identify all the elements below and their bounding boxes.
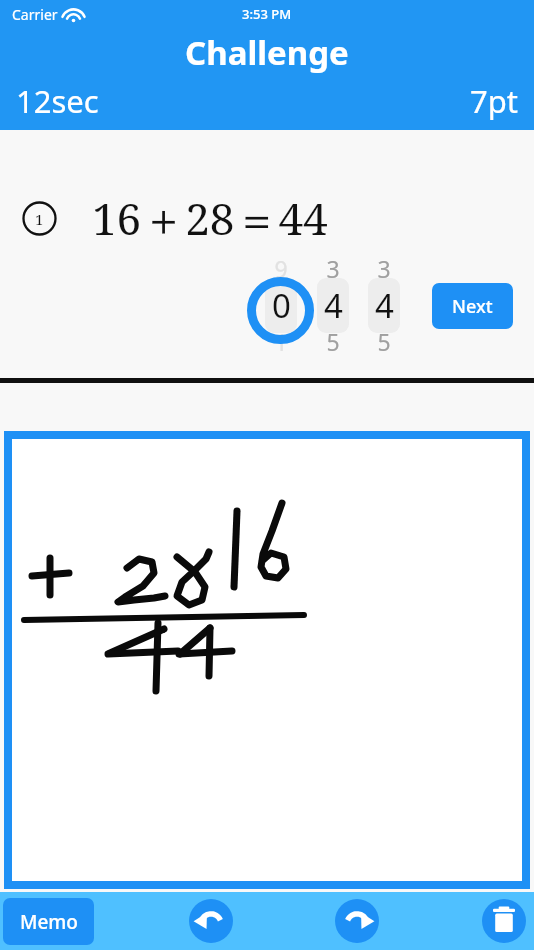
button[interactable]: Digit 4: [368, 253, 400, 357]
staticText: 7pt: [470, 80, 518, 122]
button[interactable]: Digit 4: [317, 253, 349, 357]
staticText: Challenge: [185, 30, 349, 75]
button[interactable]: Clear drawing: [480, 897, 528, 945]
staticText: 16＋28＝44: [92, 188, 328, 248]
staticText: 1: [265, 326, 297, 357]
staticText: 3:53 PM: [242, 5, 292, 23]
staticText: 3: [317, 253, 349, 284]
staticText: Next: [452, 294, 493, 319]
staticText: Memo: [20, 909, 78, 935]
button[interactable]: Undo: [187, 897, 235, 945]
button[interactable]: Next: [432, 283, 513, 329]
staticText: 5: [317, 326, 349, 357]
staticText: 1: [35, 209, 44, 229]
staticText: 4: [324, 283, 343, 328]
staticText: 0: [272, 283, 291, 328]
staticText: 4: [375, 283, 394, 328]
staticText: 9: [265, 253, 297, 284]
button[interactable]: Memo: [3, 898, 94, 945]
button[interactable]: Selected digit 0: [247, 277, 314, 344]
button[interactable]: Handwriting area: [12, 439, 522, 881]
staticText: 12sec: [16, 80, 99, 122]
button[interactable]: Redo: [333, 897, 381, 945]
staticText: 5: [368, 326, 400, 357]
button[interactable]: Digit 0: [265, 253, 297, 357]
staticText: Carrier: [12, 5, 58, 24]
staticText: 3: [368, 253, 400, 284]
